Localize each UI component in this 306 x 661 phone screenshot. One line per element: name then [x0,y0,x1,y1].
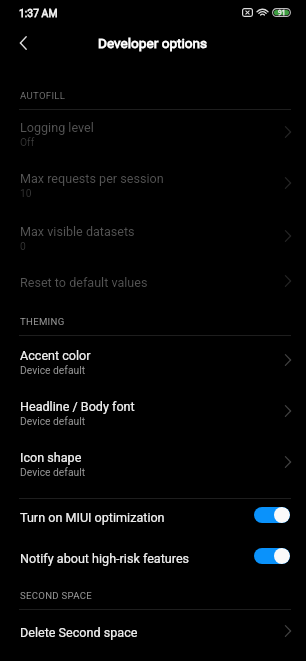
staticText: Icon shape [20,450,82,465]
staticText: Developer options [98,35,208,51]
button[interactable]: Notify about high-risk features [0,538,306,579]
staticText: Logging level [20,120,94,135]
staticText: THEMING [20,316,65,327]
button[interactable]: Max requests per session [0,159,306,210]
staticText: Accent color [20,348,91,363]
button[interactable]: Headline / Body font [0,387,306,438]
staticText: 10 [20,187,32,199]
staticText: 1:37 AM [19,7,58,19]
button[interactable]: Back [11,31,35,55]
staticText: Device default [20,466,86,478]
button[interactable]: Accent color [0,336,306,387]
staticText: Turn on MIUI optimization [20,510,254,525]
button[interactable]: Max visible datasets [0,212,306,263]
staticText: 91 [278,9,286,17]
staticText: Max visible datasets [20,224,135,239]
staticText: Notify about high-risk features [20,551,254,566]
staticText: 0 [20,240,26,252]
button[interactable]: Reset to default values [0,262,306,303]
button[interactable]: Turn on MIUI optimization [0,497,306,538]
staticText: Off [20,136,35,148]
staticText: AUTOFILL [20,90,66,101]
staticText: Delete Second space [20,625,138,640]
staticText: SECOND SPACE [20,590,93,601]
staticText: Device default [20,415,86,427]
button[interactable]: Delete Second space [0,612,306,653]
button[interactable]: Icon shape [0,438,306,489]
button[interactable]: Logging level [0,108,306,159]
staticText: Max requests per session [20,171,164,186]
staticText: Device default [20,364,86,376]
staticText: Reset to default values [20,275,148,290]
staticText: Headline / Body font [20,399,135,414]
